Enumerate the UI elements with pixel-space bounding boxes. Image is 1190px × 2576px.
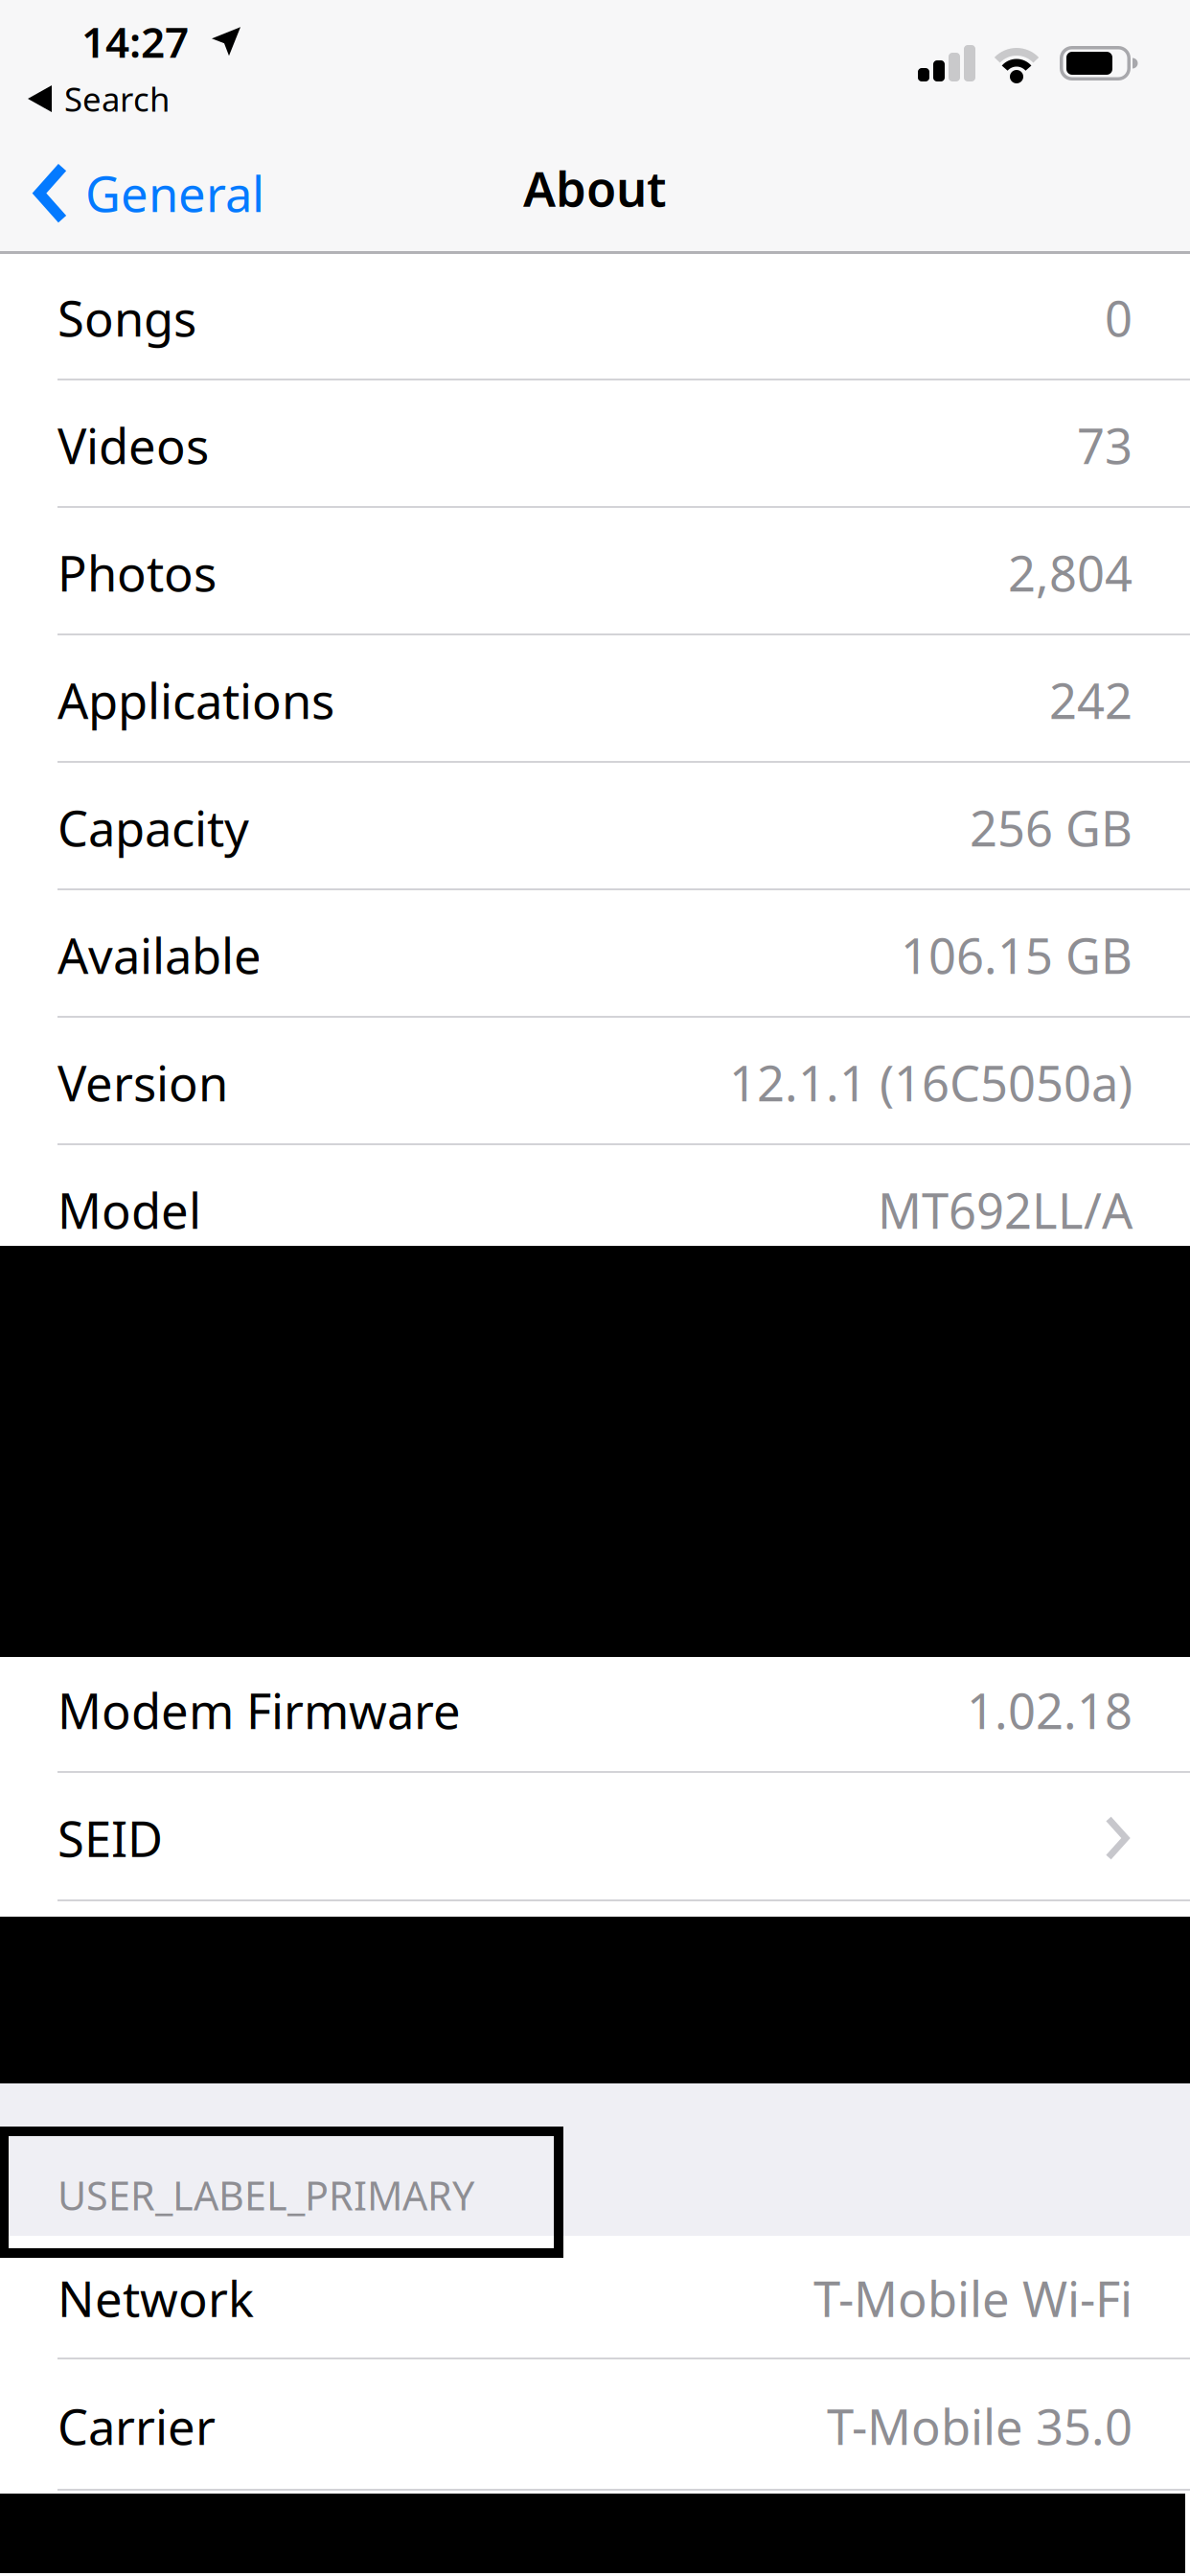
staticText: 12.1.1 (16C5050a) [729, 1050, 1133, 1115]
staticText: Modem Firmware [57, 1678, 461, 1742]
button[interactable]: SEID [0, 1774, 1190, 1902]
staticText: 73 [1077, 413, 1133, 477]
button[interactable]: Search [0, 0, 142, 44]
staticText: MT692LL/A [878, 1178, 1133, 1242]
staticText: 242 [1049, 668, 1133, 732]
staticText: Capacity [57, 795, 249, 860]
staticText: T-Mobile Wi-Fi [813, 2266, 1133, 2330]
staticText: About [523, 156, 667, 220]
staticText: 2,804 [1008, 540, 1133, 605]
staticText: T-Mobile 35.0 [827, 2394, 1133, 2458]
staticText: Carrier [57, 2394, 216, 2458]
staticText: Available [57, 923, 262, 987]
button[interactable]: General [0, 125, 231, 189]
staticText: Search [64, 77, 170, 121]
staticText: Network [57, 2266, 254, 2330]
staticText: 0 [1105, 285, 1133, 350]
staticText: Songs [57, 285, 196, 350]
staticText: 106.15 GB [901, 923, 1133, 987]
staticText: Photos [57, 540, 217, 605]
staticText: Videos [57, 413, 209, 477]
staticText: 256 GB [970, 795, 1133, 860]
staticText: 1.02.18 [967, 1678, 1133, 1742]
staticText: Version [57, 1050, 228, 1115]
staticText: Model [57, 1178, 201, 1242]
staticText: USER_LABEL_PRIMARY [57, 2169, 474, 2221]
staticText: SEID [57, 1806, 163, 1870]
staticText: 14:27 [81, 13, 189, 69]
staticText: General [85, 161, 264, 225]
staticText: Applications [57, 668, 334, 732]
